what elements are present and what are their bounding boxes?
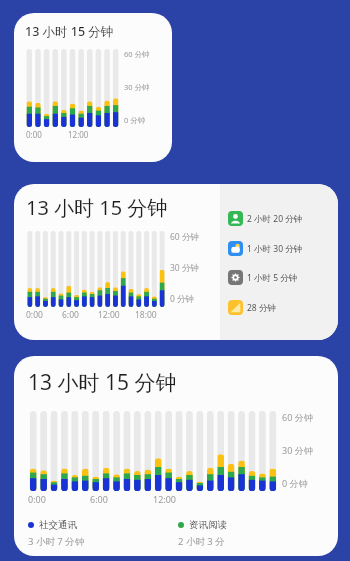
staticText: 18:00 xyxy=(135,309,157,321)
button[interactable]: 13 小时 15 分钟 xyxy=(14,356,338,556)
other: 28 分钟 xyxy=(228,300,243,315)
other: 1 小时 30 分钟 xyxy=(228,241,243,256)
button[interactable]: 资讯阅读 xyxy=(178,519,328,548)
staticText: 0:00 xyxy=(28,493,46,505)
staticText: 0:00 xyxy=(26,129,42,140)
staticText: 6:00 xyxy=(62,309,79,321)
button[interactable]: 13 小时 15 分钟 xyxy=(14,13,172,162)
other: 1 小时 5 分钟 xyxy=(228,270,243,285)
staticText: 0:00 xyxy=(26,309,43,321)
staticText: 12:00 xyxy=(68,129,89,140)
staticText: 资讯阅读 xyxy=(189,519,227,531)
staticText: 13 小时 15 分钟 xyxy=(26,194,168,221)
other: 2 小时 20 分钟 xyxy=(228,211,243,226)
staticText: 28 分钟 xyxy=(247,302,276,314)
staticText: 2 小时 20 分钟 xyxy=(247,213,303,225)
staticText: 2 小时 3 分 xyxy=(178,535,225,548)
staticText: 社交通讯 xyxy=(39,519,77,531)
staticText: 6:00 xyxy=(90,493,108,505)
staticText: 30 分钟 xyxy=(282,444,313,456)
staticText: 12:00 xyxy=(153,493,177,505)
staticText: 1 小时 30 分钟 xyxy=(247,243,303,255)
staticText: 1 小时 5 分钟 xyxy=(247,272,298,284)
staticText: 13 小时 15 分钟 xyxy=(25,23,114,40)
button[interactable]: 1 小时 5 分钟 xyxy=(228,269,332,286)
staticText: 0 分钟 xyxy=(170,293,195,305)
button[interactable]: 社交通讯 xyxy=(28,519,178,548)
staticText: 0 分钟 xyxy=(282,477,308,489)
staticText: 30 分钟 xyxy=(124,82,150,92)
button[interactable]: 2 小时 20 分钟 xyxy=(228,210,332,227)
staticText: 60 分钟 xyxy=(282,411,313,423)
staticText: 30 分钟 xyxy=(170,262,199,274)
staticText: 3 小时 7 分钟 xyxy=(28,535,85,548)
staticText: 0 分钟 xyxy=(124,115,146,125)
staticText: 60 分钟 xyxy=(170,231,199,243)
staticText: 12:00 xyxy=(98,309,120,321)
staticText: 60 分钟 xyxy=(124,49,150,59)
button[interactable]: 28 分钟 xyxy=(228,299,332,316)
staticText: 13 小时 15 分钟 xyxy=(28,368,177,397)
button[interactable]: 1 小时 30 分钟 xyxy=(228,240,332,257)
button[interactable]: 13 小时 15 分钟 xyxy=(14,184,338,340)
